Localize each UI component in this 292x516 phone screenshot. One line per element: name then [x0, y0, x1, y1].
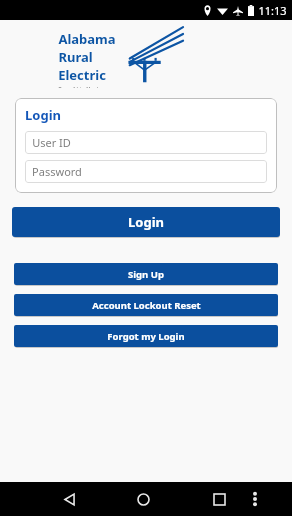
staticText: Account Lockout Reset	[92, 299, 201, 312]
staticText: Password	[32, 164, 82, 179]
button[interactable]: Back	[52, 482, 86, 516]
staticText: C r e d i t U n i o n	[58, 85, 109, 88]
button[interactable]: Account Lockout Reset	[14, 294, 278, 316]
staticText: Login	[128, 213, 164, 231]
button[interactable]: More options	[242, 486, 268, 512]
staticText: Forgot my Login	[107, 330, 185, 343]
staticText: Login	[25, 106, 61, 124]
staticText: 11:13	[258, 3, 287, 18]
button[interactable]: Password	[25, 160, 267, 183]
staticText: Sign Up	[128, 268, 164, 281]
button[interactable]: Home	[126, 482, 160, 516]
staticText: Rural	[58, 48, 93, 66]
button[interactable]: Forgot my Login	[14, 325, 278, 347]
button[interactable]: User ID	[25, 131, 267, 154]
button[interactable]: Login	[12, 207, 280, 237]
staticText: User ID	[32, 135, 71, 150]
button[interactable]: Sign Up	[14, 263, 278, 285]
staticText: Alabama	[58, 30, 116, 48]
staticText: Electric	[58, 66, 106, 84]
button[interactable]: Recent apps	[202, 482, 236, 516]
